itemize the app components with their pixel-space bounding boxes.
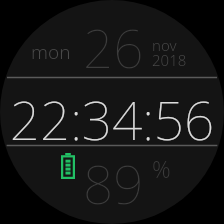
button[interactable]: Digital watch face <box>0 0 224 224</box>
other: Battery 89 percent <box>61 153 75 179</box>
staticText: 22:34:56 <box>0 83 224 155</box>
staticText: 2018 <box>152 50 187 70</box>
staticText: 26 <box>83 11 144 83</box>
staticText: % <box>152 153 171 184</box>
staticText: nov <box>152 35 177 55</box>
staticText: 89 <box>83 147 144 219</box>
staticText: mon <box>31 39 71 65</box>
